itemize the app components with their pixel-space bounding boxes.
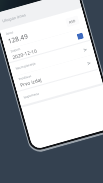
button[interactable]: Napomena — [17, 69, 103, 106]
staticText: RSD — [68, 18, 76, 25]
button[interactable]: Open — [82, 47, 88, 53]
staticText: Prvo izdaj — [19, 76, 42, 89]
button[interactable]: RSD — [65, 15, 80, 27]
staticText: Ukupan iznos — [2, 12, 27, 23]
button[interactable]: Nacin placanja — [9, 41, 95, 77]
staticText: Datum — [10, 47, 21, 53]
staticText: Napomena — [23, 91, 40, 100]
staticText: Prodavac — [18, 74, 32, 81]
staticText: Iznos — [5, 30, 14, 36]
staticText: 128.49 — [7, 31, 29, 46]
staticText: 2020-12-10 — [12, 47, 38, 61]
button[interactable]: Prodavac — [13, 54, 99, 91]
button[interactable]: Datum — [5, 27, 91, 62]
button[interactable]: Pick date — [77, 32, 84, 40]
button[interactable]: Open — [85, 60, 91, 67]
button[interactable]: Iznos — [0, 8, 87, 50]
staticText: Nacin placanja — [15, 61, 36, 71]
